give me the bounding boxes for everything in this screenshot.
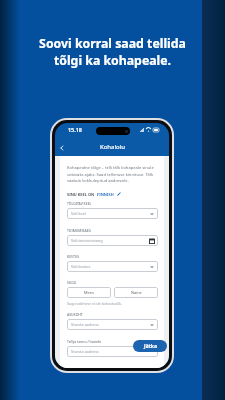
button[interactable]: Sisesta aadress: [67, 319, 158, 330]
button[interactable]: Mees: [67, 287, 111, 298]
staticText: ASUKOHT: [67, 312, 83, 317]
staticText: TÕLGITAV KEEL: [67, 201, 92, 206]
staticText: Sisesta aadress: [71, 322, 99, 327]
button[interactable]: Naine: [114, 287, 158, 298]
staticText: Vali kestus: [71, 264, 91, 269]
staticText: SUGU: [67, 280, 77, 285]
staticText: Soovi korral saad tellida tõlgi ka kohap…: [0, 35, 225, 69]
staticText: TOIMUMISAEG: [67, 228, 92, 233]
button[interactable]: Vali kestus: [67, 261, 158, 272]
staticText: Jätka: [144, 343, 157, 350]
staticText: 15.18: [68, 126, 82, 133]
staticText: Tellija teenu / lisainfo: [67, 339, 102, 344]
staticText: Vali keel: [71, 211, 86, 216]
staticText: Vali toimumisaeg: [71, 238, 103, 243]
staticText: Kohalolu: [100, 143, 125, 151]
button[interactable]: Back: [55, 141, 68, 154]
staticText: SINU KEEL ON: [67, 192, 95, 197]
button[interactable]: Sisesta aadress: [67, 346, 158, 357]
staticText: FINNISH: [97, 192, 114, 197]
button[interactable]: Vali keel: [67, 208, 158, 219]
button[interactable]: Vali toimumisaeg: [67, 235, 158, 246]
staticText: Kohapealne tõlge – telli tõlk kohapeale …: [67, 165, 158, 183]
staticText: KESTUS: [67, 254, 80, 259]
button[interactable]: Jätka: [133, 340, 167, 352]
staticText: Mees: [84, 290, 94, 295]
staticText: Naine: [131, 290, 142, 295]
staticText: Sisesta aadress: [71, 349, 99, 354]
staticText: Sugu valimine ei ole kohustuslik.: [67, 301, 122, 306]
button[interactable]: Edit language: [116, 191, 122, 197]
